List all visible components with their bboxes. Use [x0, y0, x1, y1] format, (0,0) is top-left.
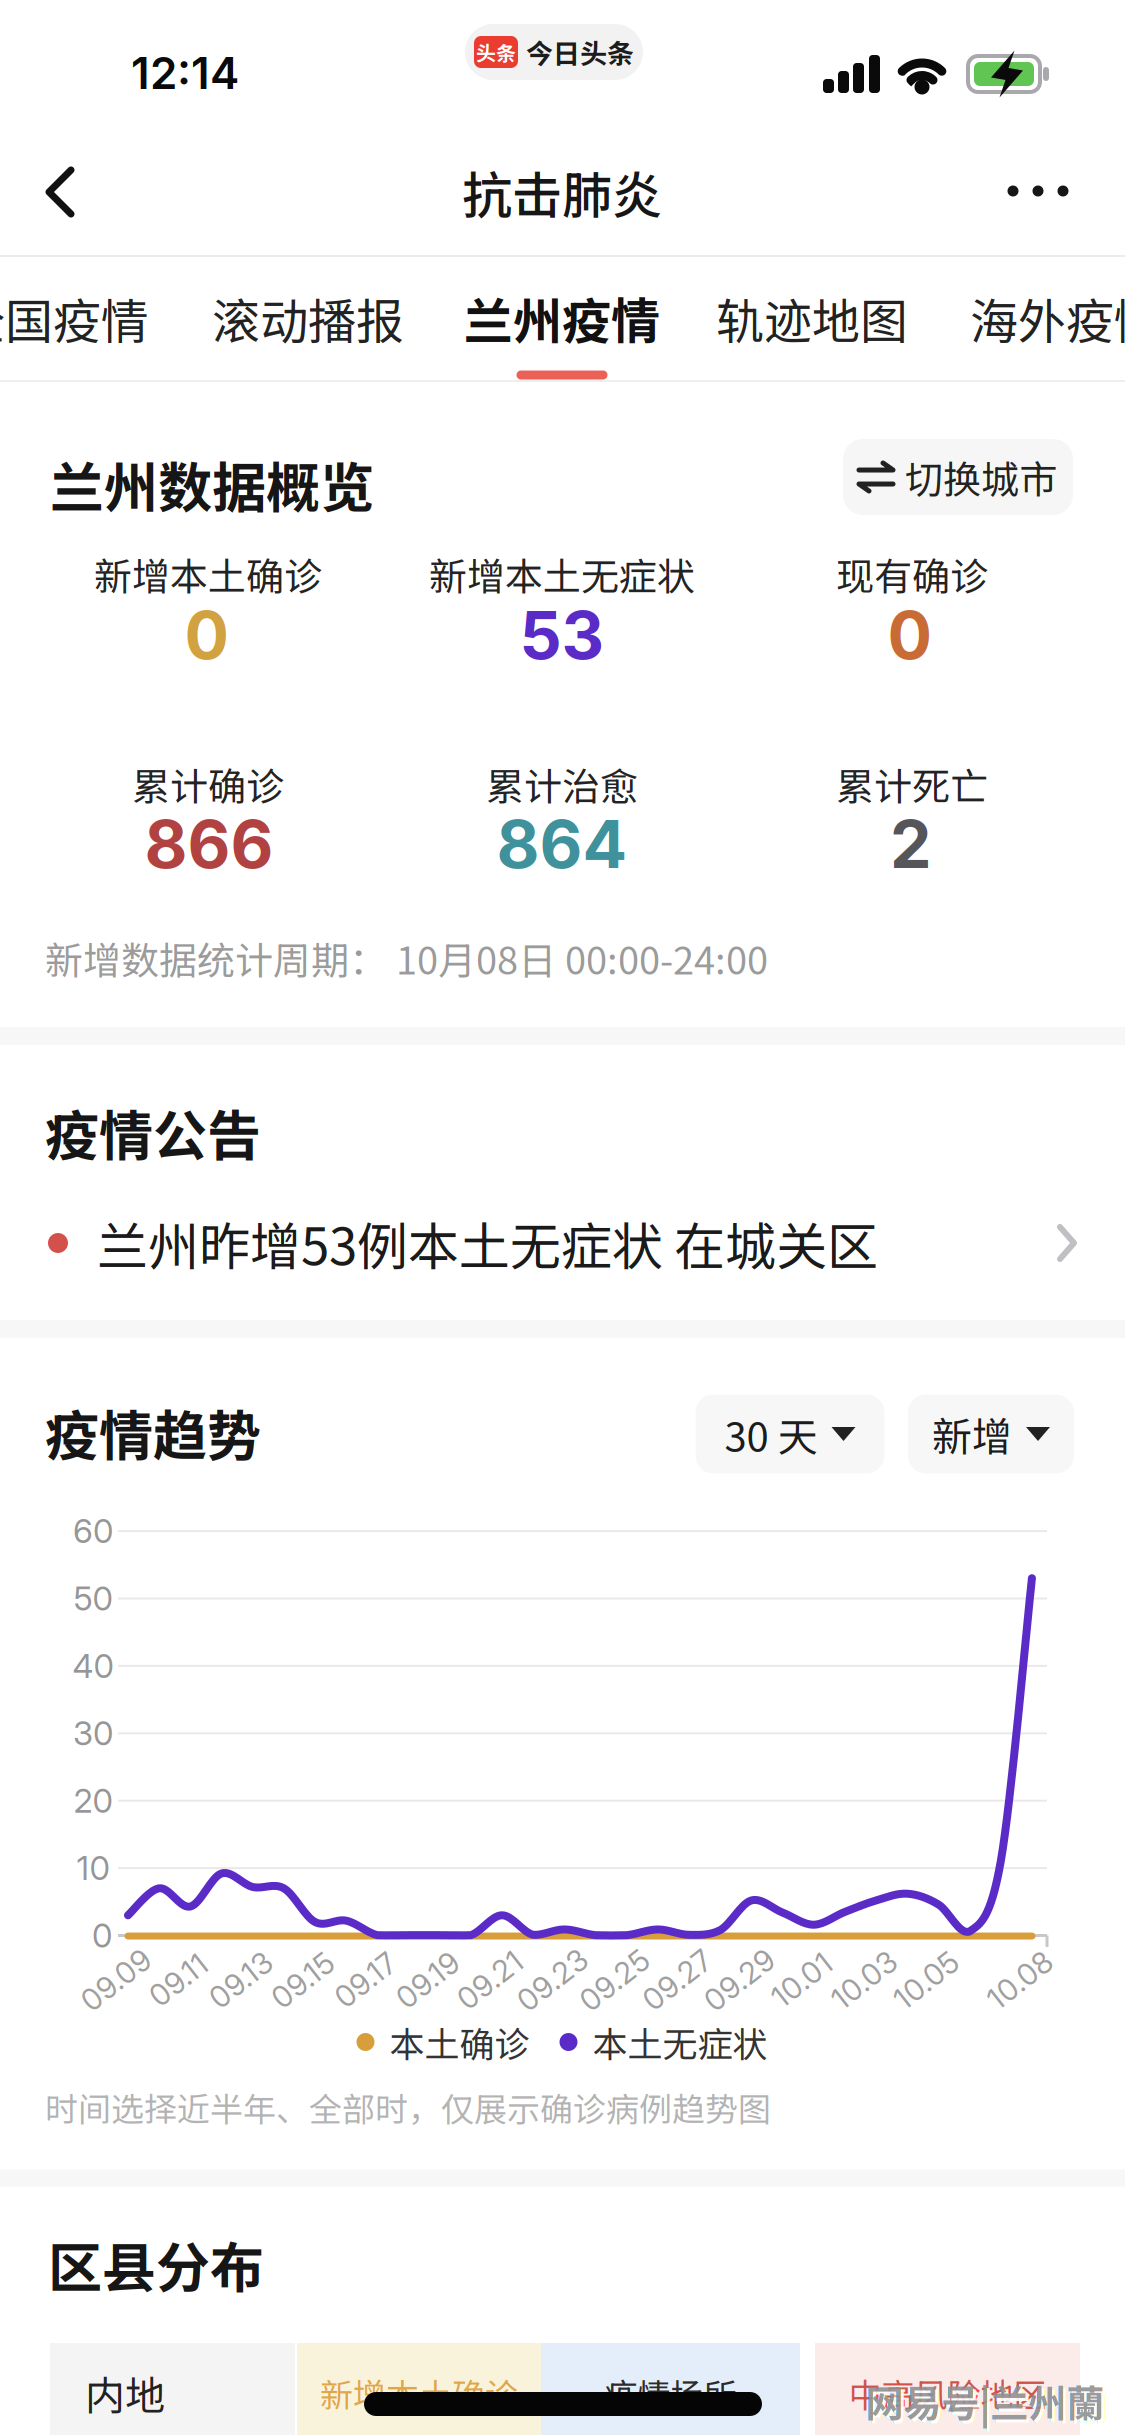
staticText: 09.19 [392, 1962, 463, 1998]
staticText: 30 [73, 1713, 113, 1753]
staticText: 09.29 [699, 1962, 779, 1998]
staticText: 09.13 [205, 1962, 276, 1998]
button[interactable] [993, 161, 1083, 221]
staticText: 中高风险地区 [848, 2369, 1046, 2417]
staticText: 864 [496, 804, 627, 884]
staticText: 10.03 [827, 1962, 901, 1998]
button[interactable]: 新增本土确诊 [297, 2343, 541, 2435]
staticText: 10 [76, 1848, 109, 1888]
staticText: 新增本土无症状 [429, 546, 695, 601]
staticText: 本土确诊 [389, 2017, 529, 2067]
staticText: 网易号|兰州蘭 [865, 2373, 1104, 2428]
staticText: 09.25 [575, 1962, 655, 1998]
staticText: 2 [890, 804, 932, 884]
staticText: 全国疫情 [0, 283, 149, 353]
staticText: 头条 [476, 37, 516, 66]
staticText: 0 [92, 1915, 112, 1955]
staticText: 切换城市 [905, 449, 1057, 504]
staticText: 兰州数据概览 [50, 445, 374, 523]
staticText: 10月08日 00:00-24:00 [387, 930, 768, 985]
staticText: 现有确诊 [836, 546, 988, 601]
staticText: 新增本土确诊 [94, 546, 322, 601]
button[interactable]: 中高风险地区 [815, 2343, 1080, 2435]
staticText: 今日头条 [526, 32, 634, 72]
staticText: 内地 [85, 2364, 165, 2422]
staticText: 疫情趋势 [45, 1393, 261, 1471]
staticText: 09.27 [638, 1962, 716, 1998]
staticText: 抗击肺炎 [462, 156, 662, 228]
staticText: 09.09 [76, 1962, 156, 1998]
staticText: 50 [73, 1578, 112, 1618]
staticText: 0 [184, 595, 229, 675]
staticText: 0 [887, 595, 932, 675]
button[interactable] [45, 166, 79, 218]
staticText: 20 [73, 1781, 112, 1821]
staticText: 09.21 [453, 1962, 527, 1998]
staticText: 区县分布 [48, 2225, 264, 2303]
button[interactable]: 兰州疫情 [464, 282, 660, 353]
staticText: 10.08 [983, 1962, 1057, 1998]
staticText: 60 [73, 1511, 113, 1551]
button[interactable]: 全国疫情 [0, 283, 149, 353]
staticText: 866 [144, 804, 273, 884]
staticText: 累计确诊 [132, 756, 284, 811]
staticText: 本土无症状 [592, 2017, 767, 2067]
staticText: 30 天 [724, 1405, 817, 1463]
staticText: 09.11 [146, 1962, 211, 1998]
button[interactable]: 疫情场所 [541, 2343, 800, 2435]
staticText: 40 [72, 1646, 113, 1686]
button[interactable]: 内地 [50, 2343, 295, 2435]
staticText: 时间选择近半年、全部时，仅展示确诊病例趋势图 [45, 2083, 771, 2131]
staticText: 兰州昨增53例本土无症状 在城关区 [97, 1206, 878, 1280]
button[interactable]: 新增 [908, 1394, 1074, 1473]
button[interactable]: 切换城市 [843, 439, 1073, 515]
staticText: 53 [519, 595, 604, 675]
staticText: 累计死亡 [836, 756, 988, 811]
staticText: 新增 [932, 1405, 1012, 1463]
staticText: 海外疫情 [970, 283, 1125, 353]
staticText: 12:14 [131, 46, 239, 100]
staticText: 网易号|兰州蘭 [868, 2376, 1107, 2431]
staticText: 疫情公告 [45, 1093, 261, 1171]
staticText: 累计治愈 [486, 756, 638, 811]
staticText: 疫情场所 [604, 2369, 736, 2417]
button[interactable]: 30 天 [695, 1394, 884, 1473]
staticText: 10.01 [768, 1962, 836, 1998]
staticText: 09.17 [331, 1962, 400, 1998]
button[interactable]: 海外疫情 [970, 283, 1125, 353]
staticText: 09.23 [512, 1962, 592, 1998]
staticText: 09.15 [267, 1962, 338, 1998]
staticText: 滚动播报 [212, 283, 404, 353]
staticText: 10.05 [889, 1962, 963, 1998]
button[interactable]: 头条 [465, 24, 643, 80]
staticText: 兰州疫情 [464, 282, 660, 353]
button[interactable]: 轨迹地图 [716, 283, 908, 353]
staticText: 新增本土确诊 [320, 2369, 518, 2417]
button[interactable]: 滚动播报 [212, 283, 404, 353]
staticText: 轨迹地图 [716, 283, 908, 353]
button[interactable]: 兰州昨增53例本土无症状 在城关区 [0, 1188, 1125, 1298]
staticText: 新增数据统计周期： [45, 930, 387, 985]
